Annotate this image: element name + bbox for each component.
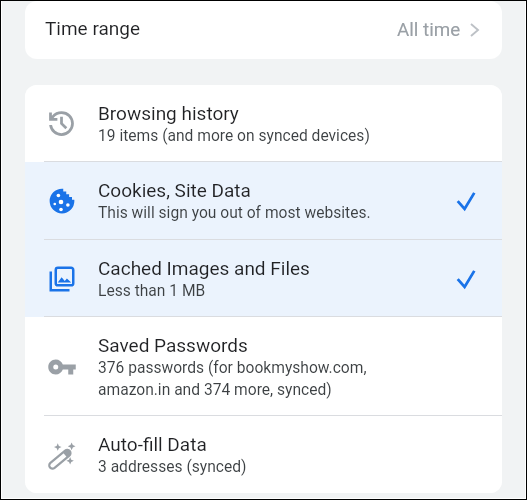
staticText: Saved Passwords xyxy=(98,334,248,356)
other: Cached images xyxy=(25,240,98,317)
staticText: Browsing history xyxy=(98,102,239,124)
button[interactable]: Time range xyxy=(25,1,502,59)
staticText: Time range xyxy=(45,17,141,39)
button[interactable]: Cookies xyxy=(25,162,502,240)
other: Saved passwords xyxy=(25,317,98,416)
staticText: 19 items (and more on synced devices) xyxy=(98,127,370,145)
button[interactable]: Saved passwords xyxy=(25,317,502,416)
staticText: Less than 1 MB xyxy=(98,282,206,300)
other: Cookies xyxy=(25,162,98,240)
staticText: Auto-fill Data xyxy=(98,433,207,455)
staticText: 376 passwords (for bookmyshow.com, xyxy=(98,359,367,377)
staticText: Cookies, Site Data xyxy=(98,179,251,201)
other: Auto-fill data xyxy=(25,416,98,493)
other: Browsing history xyxy=(25,85,98,162)
staticText: 3 addresses (synced) xyxy=(98,458,247,476)
staticText: amazon.in and 374 more, synced) xyxy=(98,381,332,399)
staticText: All time xyxy=(397,19,461,41)
button[interactable]: Auto-fill data xyxy=(25,416,502,493)
staticText: This will sign you out of most websites. xyxy=(98,204,371,222)
button[interactable]: Cached images xyxy=(25,240,502,317)
button[interactable]: Browsing history xyxy=(25,85,502,162)
staticText: Cached Images and Files xyxy=(98,257,310,279)
